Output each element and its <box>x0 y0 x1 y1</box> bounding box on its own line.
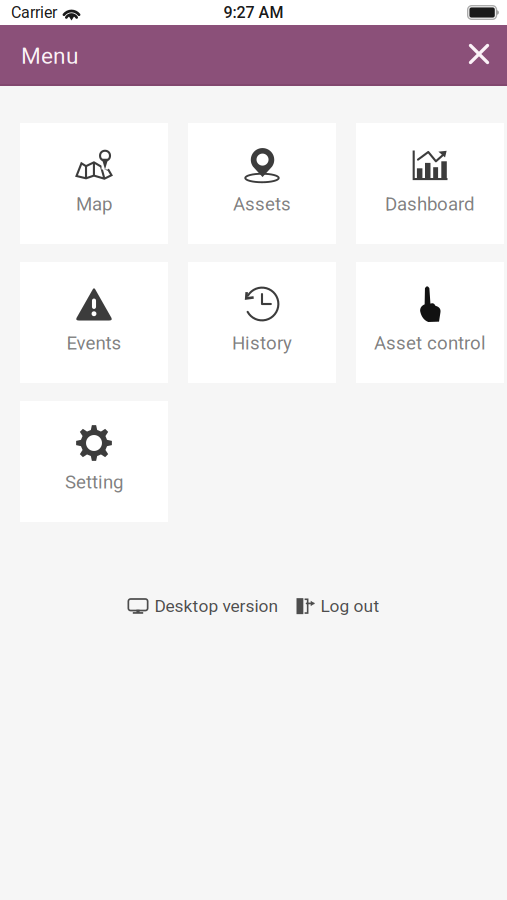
staticText: Setting <box>65 471 123 493</box>
staticText: Map <box>76 193 112 215</box>
button[interactable]: Assets <box>188 123 336 244</box>
button[interactable]: Map <box>20 123 168 244</box>
staticText: Carrier <box>11 3 57 22</box>
button[interactable]: Log out <box>296 596 379 616</box>
staticText: Menu <box>21 43 78 69</box>
staticText: Assets <box>233 193 291 215</box>
staticText: Asset control <box>374 332 486 354</box>
button[interactable]: Events <box>20 262 168 383</box>
button[interactable]: History <box>188 262 336 383</box>
staticText: Log out <box>320 596 379 616</box>
staticText: 9:27 AM <box>223 3 283 22</box>
staticText: History <box>232 332 292 354</box>
button[interactable]: Close <box>456 33 502 79</box>
button[interactable]: Asset control <box>356 262 504 383</box>
button[interactable]: Setting <box>20 401 168 522</box>
staticText: Events <box>66 332 121 354</box>
staticText: Desktop version <box>154 596 278 616</box>
button[interactable]: Dashboard <box>356 123 504 244</box>
button[interactable]: Desktop version <box>127 596 278 616</box>
staticText: Dashboard <box>385 193 475 215</box>
